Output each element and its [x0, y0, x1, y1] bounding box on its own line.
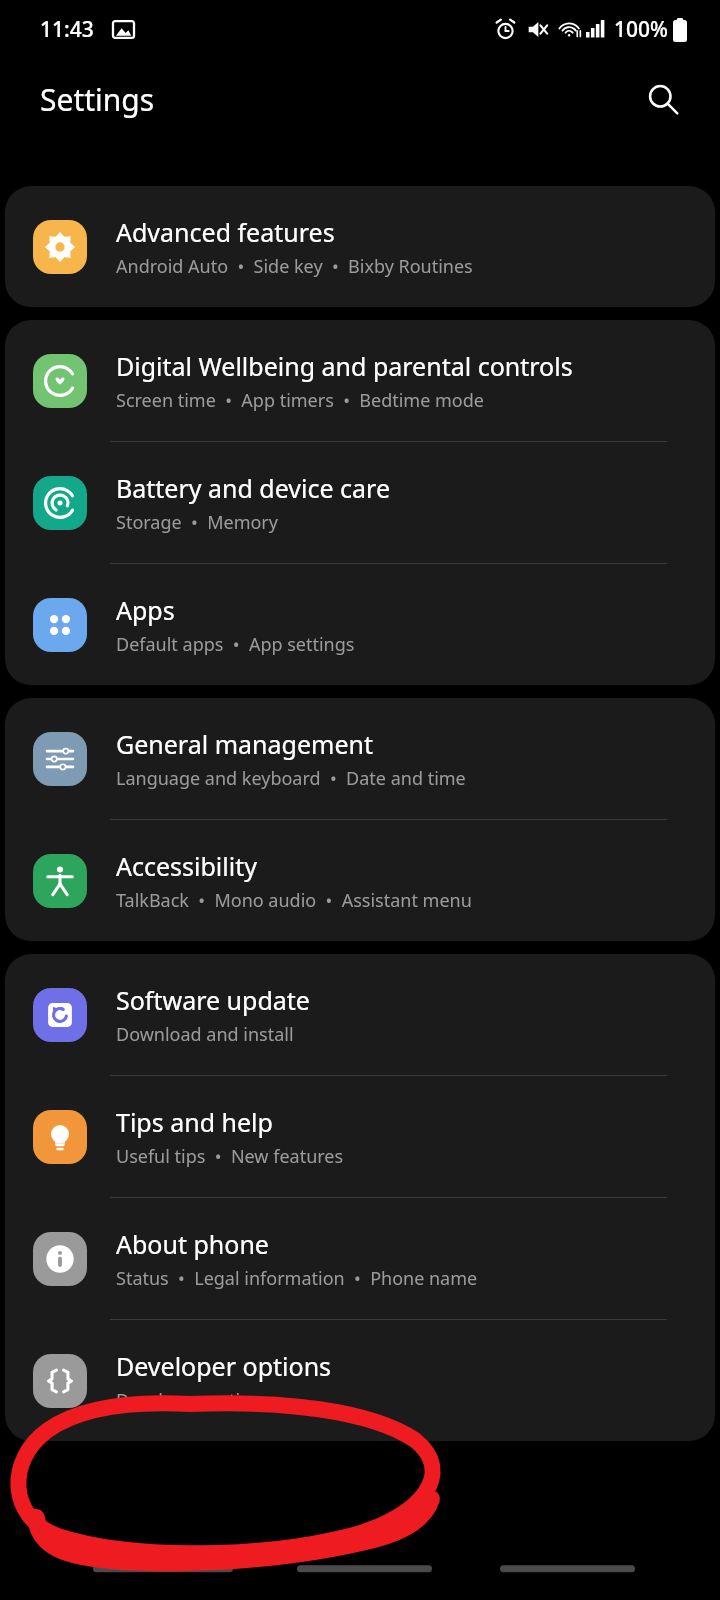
staticText: Tips and help	[116, 1105, 273, 1139]
staticText: Download and install	[116, 1022, 294, 1047]
button[interactable]: About phone	[5, 1198, 715, 1319]
button[interactable]: Tips and help	[5, 1076, 715, 1197]
staticText: Digital Wellbeing and parental controls	[116, 349, 573, 383]
button[interactable]: Apps	[5, 564, 715, 685]
button[interactable]: General management	[5, 698, 715, 819]
button[interactable]: Battery and device care	[5, 442, 715, 563]
button[interactable]: Accessibility	[5, 820, 715, 941]
staticText: Storage • Memory	[116, 510, 278, 535]
staticText: Developer options	[116, 1388, 271, 1413]
button[interactable]: Developer options	[5, 1320, 715, 1441]
staticText: 11:43	[40, 15, 94, 44]
staticText: TalkBack • Mono audio • Assistant menu	[116, 888, 472, 913]
button[interactable]: Digital Wellbeing and parental controls	[5, 320, 715, 441]
staticText: Screen time • App timers • Bedtime mode	[116, 388, 484, 413]
staticText: Advanced features	[116, 215, 335, 249]
staticText: General management	[116, 727, 373, 761]
staticText: 100%	[614, 15, 668, 44]
staticText: Status • Legal information • Phone name	[116, 1266, 478, 1291]
staticText: Developer options	[116, 1349, 332, 1383]
staticText: Software update	[116, 983, 310, 1017]
staticText: About phone	[116, 1227, 269, 1261]
staticText: Default apps • App settings	[116, 632, 355, 657]
staticText: Useful tips • New features	[116, 1144, 344, 1169]
button[interactable]: Software update	[5, 954, 715, 1075]
button[interactable]: Advanced features	[5, 186, 715, 307]
staticText: Android Auto • Side key • Bixby Routines	[116, 254, 473, 279]
staticText: Settings	[40, 79, 155, 120]
staticText: Accessibility	[116, 849, 257, 883]
button[interactable]: Search	[635, 71, 691, 127]
staticText: Language and keyboard • Date and time	[116, 766, 466, 791]
staticText: Apps	[116, 593, 175, 627]
staticText: Battery and device care	[116, 471, 391, 505]
